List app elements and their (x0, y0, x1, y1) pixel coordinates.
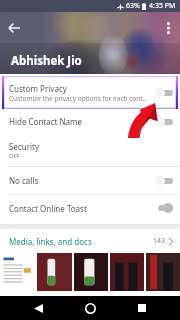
staticText: Contact Online Toast (9, 203, 87, 214)
button[interactable] (110, 253, 144, 291)
button[interactable]: Home (76, 296, 104, 320)
button[interactable]: Toggle (155, 203, 173, 213)
staticText: OFF (9, 152, 20, 160)
button[interactable]: Security (0, 134, 180, 166)
button[interactable]: More options (158, 18, 178, 38)
staticText: Customize the privacy options for each c… (9, 94, 148, 103)
button[interactable]: Hide Contact Name (0, 109, 180, 134)
staticText: Hide Contact Name (9, 116, 83, 127)
button[interactable]: Back (24, 296, 52, 320)
button[interactable]: No calls (0, 167, 180, 194)
button[interactable]: Toggle (155, 176, 173, 186)
staticText: 4:35 PM (149, 1, 176, 11)
button[interactable]: Back (4, 18, 24, 38)
staticText: No calls (9, 175, 39, 186)
button[interactable]: Contact Online Toast (0, 195, 180, 221)
button[interactable] (0, 253, 35, 291)
staticText: Abhishek Jio (11, 53, 82, 69)
staticText: Security (9, 141, 40, 152)
staticText: 143 (153, 236, 166, 246)
staticText: Media, links, and docs (9, 236, 153, 247)
button[interactable]: Media, links, and docs (0, 229, 180, 253)
staticText: 63% (126, 1, 140, 11)
button[interactable]: Toggle (155, 88, 173, 98)
button[interactable] (146, 253, 180, 291)
button[interactable] (37, 253, 72, 291)
staticText: Custom Privacy (9, 83, 67, 94)
button[interactable] (74, 253, 108, 291)
button[interactable]: Recents (128, 296, 156, 320)
button[interactable]: Toggle (155, 117, 173, 127)
button[interactable]: Custom Privacy (0, 76, 180, 109)
